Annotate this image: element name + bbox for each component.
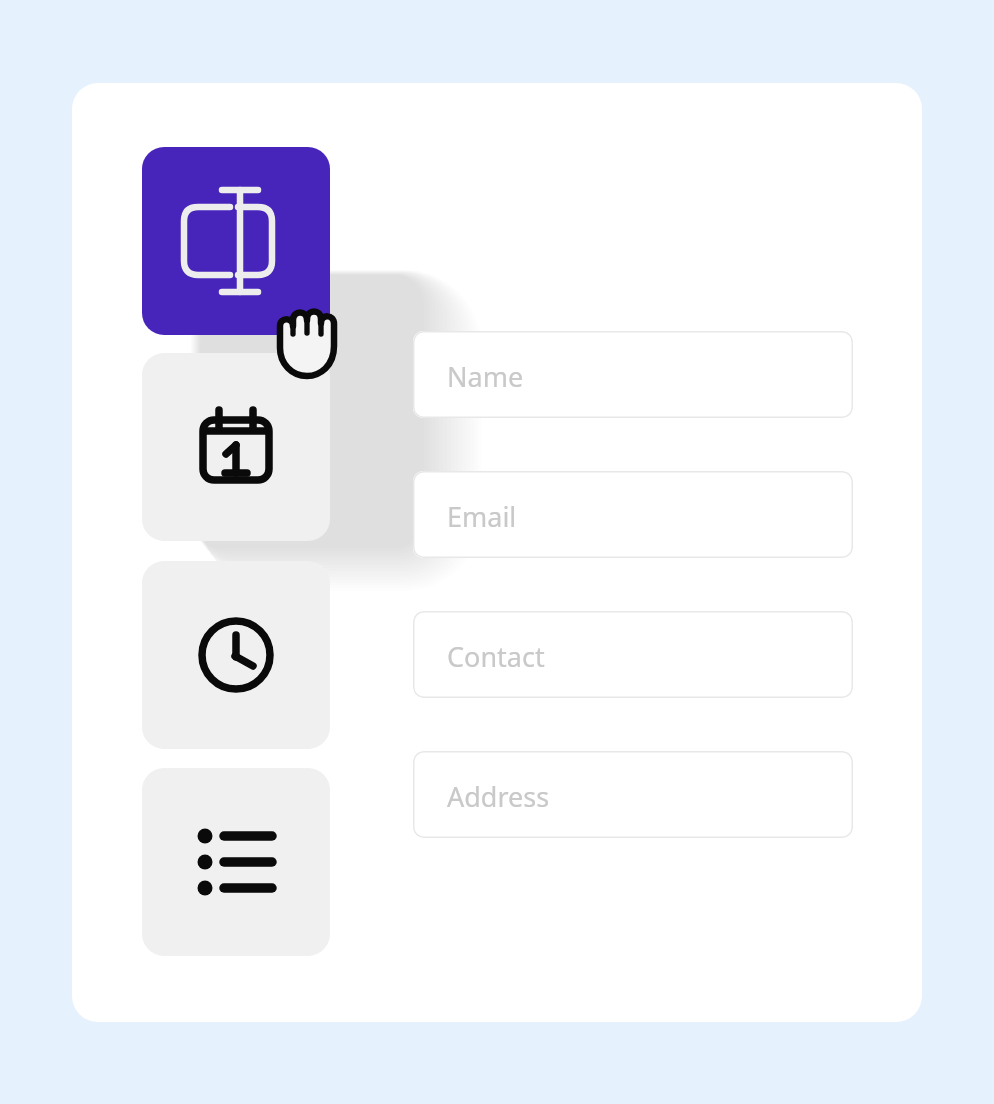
button[interactable]: Time picker component xyxy=(142,561,330,749)
other: Drag handle cursor xyxy=(268,290,354,382)
button[interactable]: Name xyxy=(413,331,853,418)
button[interactable]: List component xyxy=(142,768,330,956)
button[interactable]: Date picker component xyxy=(142,353,330,541)
staticText: Address xyxy=(447,778,550,815)
staticText: Contact xyxy=(447,638,545,675)
button[interactable]: Address xyxy=(413,751,853,838)
button[interactable]: Text field component xyxy=(142,147,330,335)
staticText: Name xyxy=(447,358,524,395)
staticText: Email xyxy=(447,498,517,535)
button[interactable]: Contact xyxy=(413,611,853,698)
button[interactable]: Email xyxy=(413,471,853,558)
